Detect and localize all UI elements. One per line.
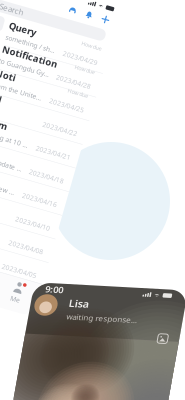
button[interactable]: Support [77, 19, 94, 28]
staticText: Alert [28, 173, 51, 185]
staticText: Query [28, 50, 56, 62]
button[interactable]: Daily [0, 221, 132, 246]
staticText: Daily [28, 222, 52, 234]
staticText: waiting response... [38, 29, 109, 40]
button[interactable]: Query [0, 49, 132, 74]
button[interactable]: Noti [0, 98, 132, 123]
staticText: to Guangdu Gymnasium for training... [28, 88, 80, 97]
staticText: Lisa [38, 13, 58, 27]
button[interactable]: Notifications [94, 19, 111, 28]
button[interactable]: Reply [0, 246, 132, 270]
staticText: Info [28, 197, 48, 210]
staticText: Team [28, 148, 54, 160]
button[interactable]: News [0, 270, 132, 295]
button[interactable]: Messages [8, 18, 19, 29]
button[interactable]: Info [0, 197, 132, 221]
staticText: please review the doc [28, 211, 80, 220]
staticText: 9:00 [7, 7, 24, 17]
button[interactable]: Me [88, 300, 132, 322]
staticText: 9:00 [12, 0, 30, 13]
button[interactable]: Search [0, 34, 132, 46]
staticText: Contacts [53, 313, 79, 322]
button[interactable]: Notification [0, 74, 132, 98]
staticText: 2023/04/29 [88, 63, 124, 72]
button[interactable]: Team [0, 147, 132, 172]
button[interactable]: Chats [0, 300, 44, 322]
button[interactable]: Alert [0, 172, 132, 197]
staticText: 2023/04/22 [88, 137, 124, 146]
staticText: Reply [28, 246, 54, 259]
button[interactable]: CN [0, 123, 132, 147]
staticText: Search [14, 35, 39, 45]
staticText: something / short [28, 63, 80, 72]
staticText: Chats [13, 313, 30, 322]
staticText: 2023/04/05 [88, 285, 124, 294]
staticText: Notification [28, 74, 85, 87]
staticText: Me [105, 313, 115, 322]
button[interactable]: Contacts [44, 300, 88, 322]
staticText: Noti [28, 99, 49, 111]
staticText: weekly digest [28, 285, 71, 294]
staticText: News [28, 271, 54, 283]
staticText: meeting at 10 am [28, 162, 80, 171]
staticText: system update ready [28, 186, 80, 195]
